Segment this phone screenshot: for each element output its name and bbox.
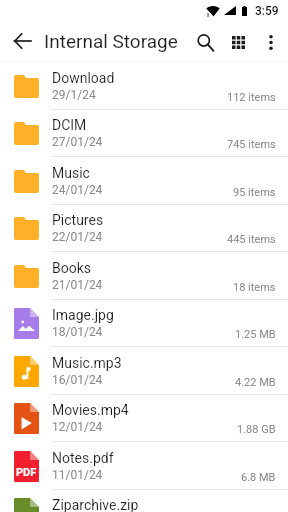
staticText: 12/01/24	[52, 420, 103, 434]
staticText: 18/01/24	[52, 325, 103, 339]
staticText: 21/01/24	[52, 278, 103, 292]
button[interactable]: Movies.mp4	[0, 394, 288, 442]
staticText: Music	[52, 165, 90, 181]
staticText: 1.25 MB	[235, 328, 276, 341]
button[interactable]: Books	[0, 252, 288, 300]
staticText: 29/1/24	[52, 88, 96, 102]
button[interactable]: Music	[0, 157, 288, 205]
staticText: 24/01/24	[52, 183, 103, 197]
button[interactable]: Back	[4, 22, 40, 60]
staticText: Download	[52, 70, 115, 86]
staticText: Internal Storage	[44, 30, 178, 52]
button[interactable]: Grid view	[221, 25, 255, 59]
staticText: 112 items	[227, 91, 276, 104]
staticText: 4.22 MB	[235, 376, 276, 389]
staticText: Pictures	[52, 212, 104, 228]
staticText: Notes.pdf	[52, 450, 114, 466]
button[interactable]: Image.jpg	[0, 299, 288, 347]
button[interactable]: Download	[0, 62, 288, 110]
button[interactable]: Music.mp3	[0, 347, 288, 395]
button[interactable]: Pictures	[0, 204, 288, 252]
staticText: Music.mp3	[52, 355, 122, 371]
button[interactable]: More options	[254, 25, 288, 59]
staticText: DCIM	[52, 117, 87, 133]
staticText: Movies.mp4	[52, 402, 129, 418]
staticText: Ziparchive.zip	[52, 497, 139, 512]
staticText: 95 items	[233, 186, 276, 199]
staticText: 445 items	[227, 233, 276, 246]
staticText: Image.jpg	[52, 307, 114, 323]
staticText: PDF	[16, 466, 37, 479]
staticText: 18 items	[233, 281, 276, 294]
staticText: 11/01/24	[52, 468, 103, 482]
staticText: 22/01/24	[52, 230, 103, 244]
button[interactable]: PDF	[0, 442, 288, 490]
staticText: Books	[52, 260, 92, 276]
staticText: 1.88 GB	[237, 423, 276, 436]
staticText: 6.8 MB	[241, 471, 276, 484]
button[interactable]: Ziparchive.zip	[0, 489, 288, 512]
staticText: 27/01/24	[52, 135, 103, 149]
staticText: 745 items	[227, 138, 276, 151]
button[interactable]: Search	[188, 25, 222, 59]
button[interactable]: DCIM	[0, 109, 288, 157]
staticText: 16/01/24	[52, 373, 103, 387]
staticText: 3:59	[255, 4, 279, 18]
